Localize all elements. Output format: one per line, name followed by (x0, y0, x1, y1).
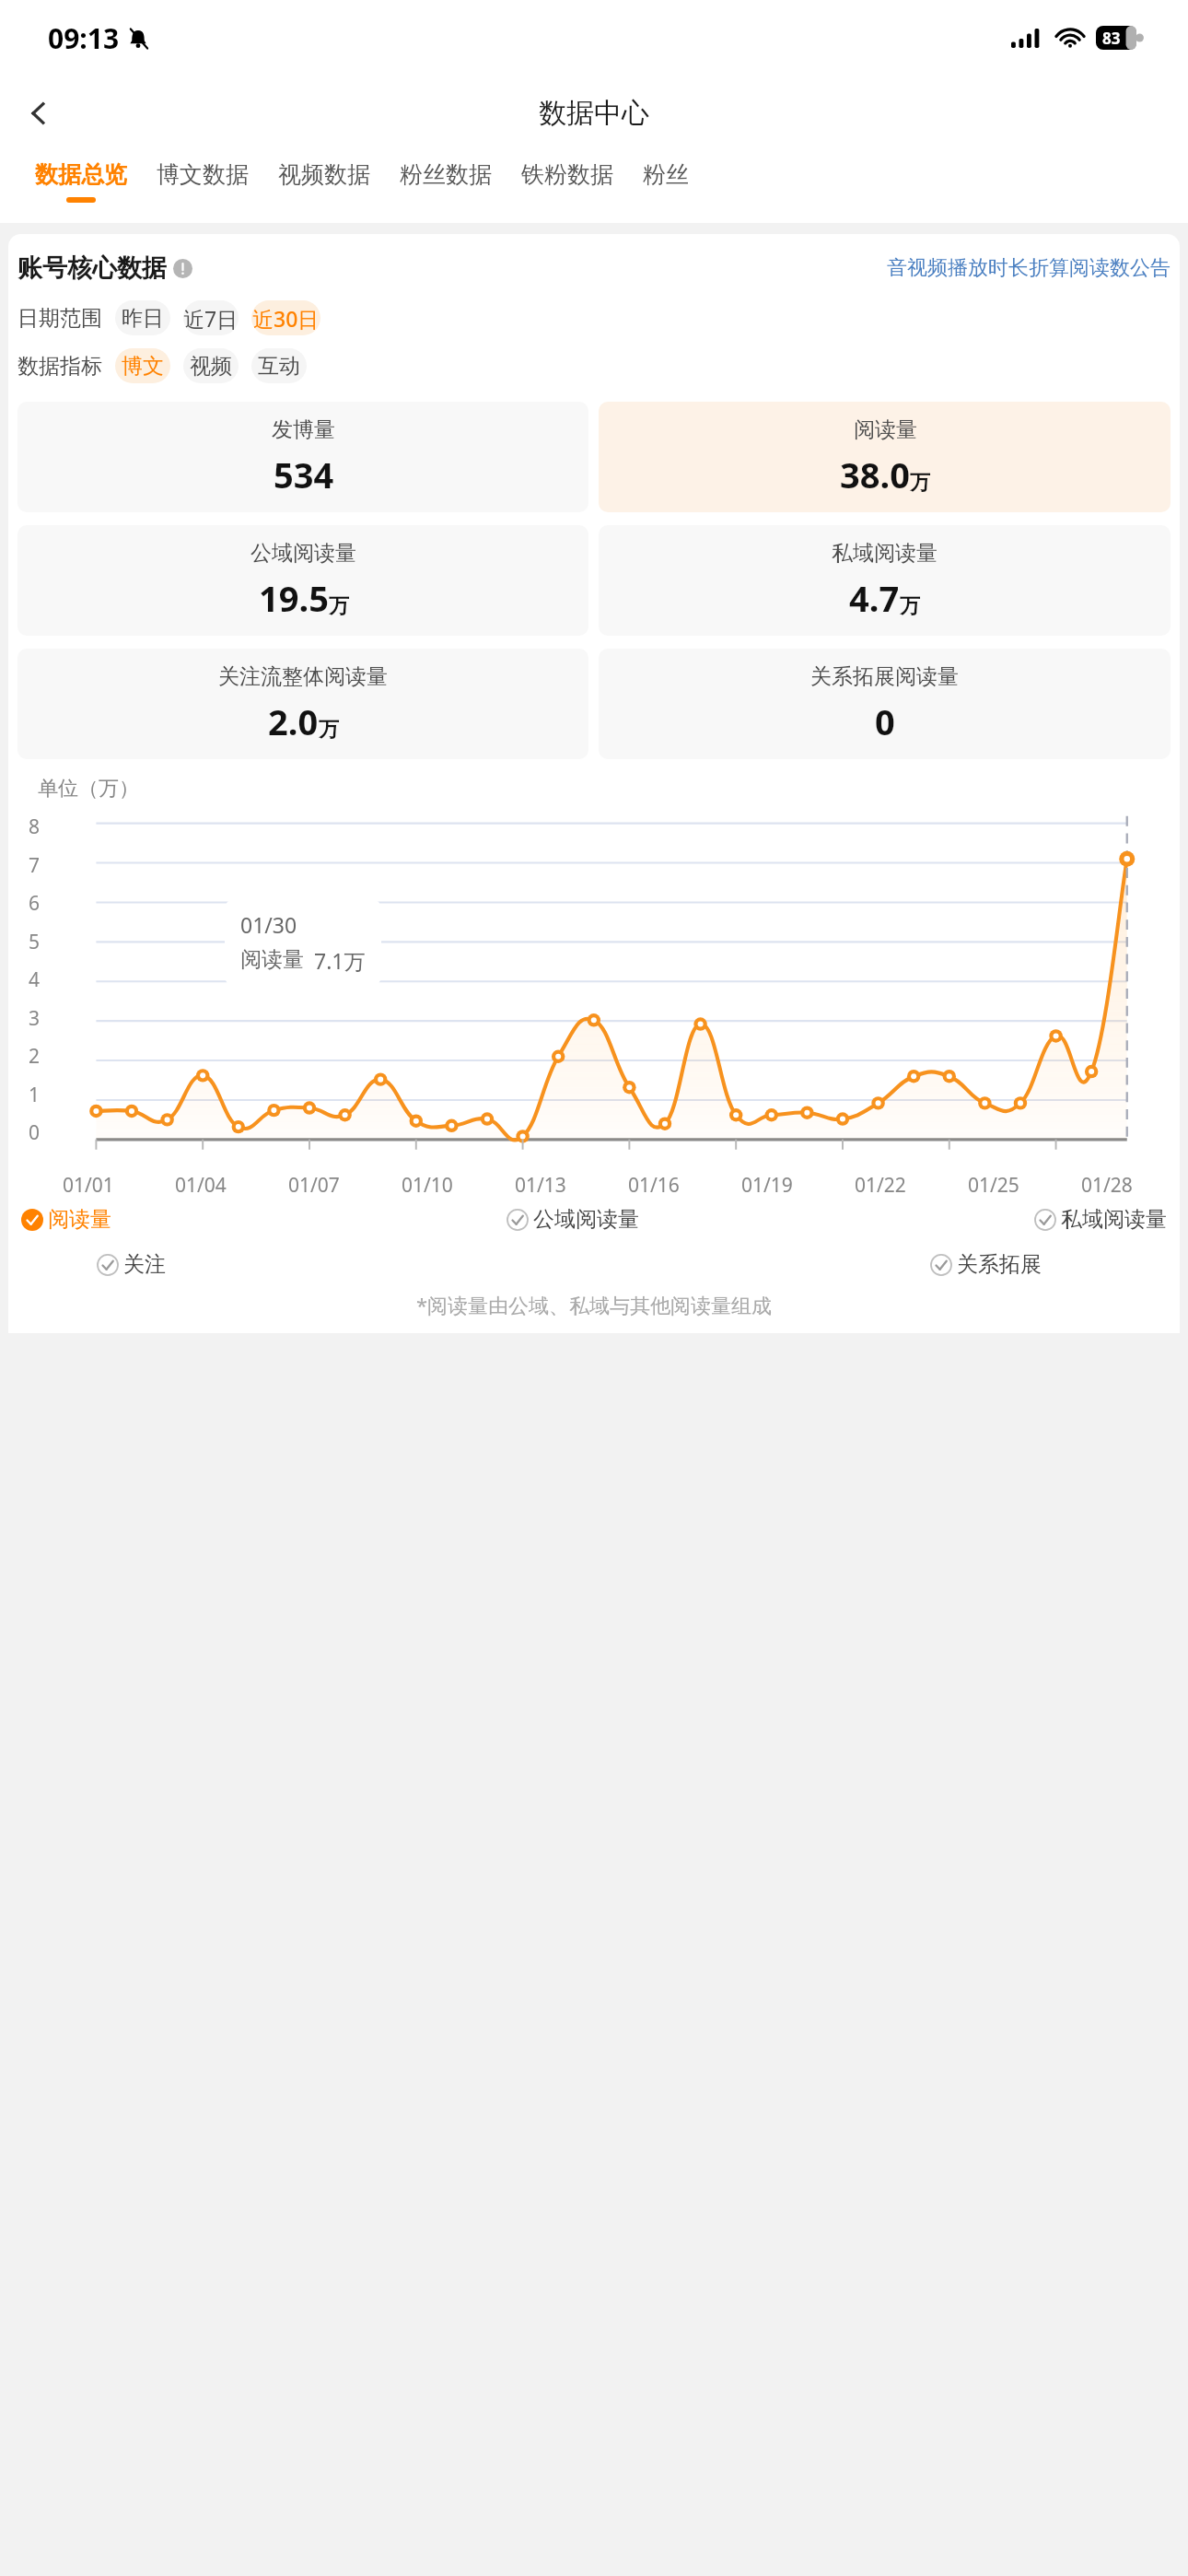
button[interactable]: 视频数据 (263, 151, 385, 223)
button[interactable]: 粉丝数据 (385, 151, 507, 223)
staticText: 日期范围 (17, 305, 102, 332)
staticText: 01/04 (175, 1172, 227, 1199)
staticText: 公域阅读量 (533, 1206, 639, 1233)
staticText: 01/13 (515, 1172, 566, 1199)
staticText: 铁粉数据 (521, 160, 613, 189)
staticText: 01/01 (63, 1172, 114, 1199)
staticText: 私域阅读量 (1061, 1206, 1167, 1233)
staticText: 数据总览 (35, 160, 127, 189)
staticText: 0 (29, 1119, 41, 1146)
button[interactable]: Back (9, 84, 68, 143)
staticText: 阅读量 (48, 1206, 111, 1233)
staticText: 博文数据 (157, 160, 249, 189)
button[interactable]: 阅读量 (21, 1206, 111, 1233)
staticText: 5 (29, 929, 41, 955)
staticText: 01/10 (402, 1172, 453, 1199)
staticText: 09:13 (48, 19, 120, 57)
staticText: 4 (29, 966, 41, 993)
staticText: 发博量 (272, 416, 335, 443)
staticText: 视频数据 (278, 160, 370, 189)
button[interactable]: 关系拓展阅读量 (599, 649, 1171, 759)
button[interactable]: 阅读量 (599, 402, 1171, 512)
staticText: 38.0 (840, 451, 910, 498)
staticText: 83 (1102, 28, 1121, 49)
staticText: 关系拓展 (957, 1251, 1042, 1278)
staticText: 01/16 (628, 1172, 680, 1199)
button[interactable]: 铁粉数据 (507, 151, 628, 223)
button[interactable]: 公域阅读量 (507, 1206, 639, 1233)
staticText: 阅读量 (854, 416, 917, 443)
staticText: 博文 (122, 353, 164, 380)
staticText: 粉丝 (643, 160, 689, 189)
button[interactable]: 互动 (251, 348, 307, 383)
button[interactable]: 发博量 (17, 402, 588, 512)
staticText: 01/22 (855, 1172, 906, 1199)
staticText: 万 (319, 717, 339, 743)
button[interactable]: 关系拓展 (930, 1251, 1042, 1278)
staticText: 3 (29, 1005, 41, 1032)
staticText: 视频 (190, 353, 232, 380)
button[interactable]: 音视频播放时长折算阅读数公告 (887, 255, 1171, 281)
staticText: 账号核心数据 (17, 252, 167, 284)
staticText: 7 (29, 852, 41, 879)
staticText: 8 (29, 814, 41, 840)
staticText: 私域阅读量 (832, 540, 938, 567)
button[interactable]: 近7日 (183, 300, 239, 335)
staticText: 万 (910, 470, 930, 496)
staticText: 粉丝数据 (400, 160, 492, 189)
staticText: 534 (274, 451, 334, 498)
staticText: 昨日 (122, 305, 164, 332)
staticText: 1 (29, 1082, 41, 1108)
staticText: 01/25 (968, 1172, 1019, 1199)
button[interactable]: 近30日 (251, 300, 320, 335)
staticText: 关注流整体阅读量 (218, 663, 388, 690)
staticText: 万 (329, 593, 349, 619)
staticText: 关系拓展阅读量 (810, 663, 959, 690)
staticText: 近7日 (183, 304, 239, 333)
staticText: 万 (900, 593, 920, 619)
staticText: 2.0 (268, 697, 319, 745)
staticText: 近30日 (252, 304, 320, 333)
staticText: 7.1万 (314, 946, 366, 975)
button[interactable]: 公域阅读量 (17, 525, 588, 636)
staticText: 4.7 (849, 574, 900, 622)
button[interactable]: 私域阅读量 (599, 525, 1171, 636)
button[interactable]: 昨日 (115, 300, 170, 335)
staticText: 关注 (123, 1251, 166, 1278)
staticText: 音视频播放时长折算阅读数公告 (887, 255, 1171, 281)
staticText: 01/30 (240, 910, 297, 939)
button[interactable]: 数据总览 (20, 151, 142, 223)
staticText: 01/28 (1081, 1172, 1133, 1199)
button[interactable]: 粉丝 (628, 151, 704, 223)
button[interactable]: 博文数据 (142, 151, 263, 223)
staticText: 数据指标 (17, 353, 102, 380)
button[interactable]: 私域阅读量 (1034, 1206, 1167, 1233)
staticText: *阅读量由公域、私域与其他阅读量组成 (8, 1291, 1180, 1318)
button[interactable]: 博文 (115, 348, 170, 383)
staticText: 2 (29, 1043, 41, 1070)
staticText: 01/19 (741, 1172, 793, 1199)
staticText: 数据中心 (539, 96, 649, 131)
staticText: 19.5 (259, 574, 329, 622)
staticText: 互动 (258, 353, 300, 380)
staticText: 0 (875, 697, 895, 745)
button[interactable]: Info (173, 259, 192, 278)
staticText: 单位（万） (38, 776, 139, 802)
staticText: 公域阅读量 (250, 540, 356, 567)
button[interactable]: 关注 (97, 1251, 166, 1278)
staticText: 6 (29, 890, 41, 917)
button[interactable]: 视频 (183, 348, 239, 383)
staticText: 01/07 (288, 1172, 340, 1199)
staticText: 阅读量 (240, 946, 304, 973)
button[interactable]: 关注流整体阅读量 (17, 649, 588, 759)
